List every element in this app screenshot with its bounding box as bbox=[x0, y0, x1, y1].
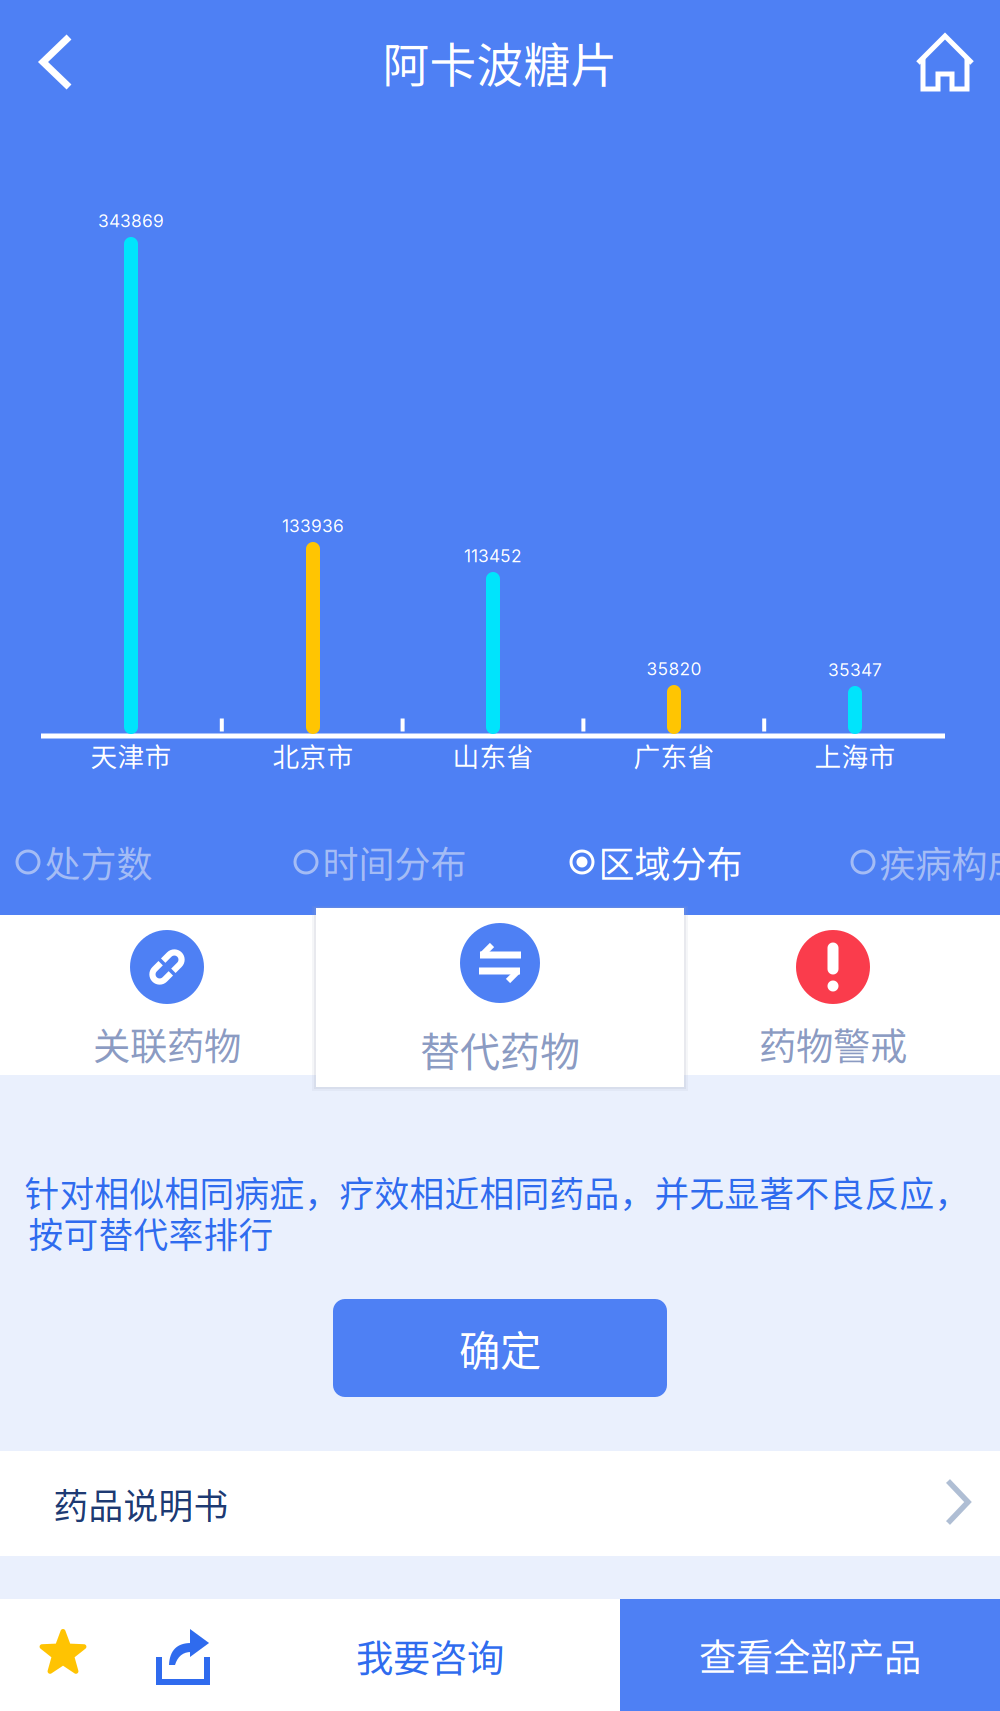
staticText: 北京市 bbox=[272, 736, 353, 774]
staticText: 区域分布 bbox=[598, 836, 742, 888]
staticText: 上海市 bbox=[814, 736, 895, 774]
button[interactable]: Back bbox=[1, 0, 111, 124]
button[interactable]: 时间分布 bbox=[293, 833, 466, 891]
button[interactable]: Favourite bbox=[7, 1597, 119, 1709]
button[interactable]: 处方数 bbox=[15, 833, 152, 891]
staticText: 查看全部产品 bbox=[699, 1628, 921, 1682]
button[interactable]: Share bbox=[127, 1600, 239, 1711]
staticText: 确定 bbox=[459, 1318, 541, 1378]
staticText: 按可替代率排行 bbox=[28, 1208, 273, 1258]
staticText: 时间分布 bbox=[322, 836, 466, 888]
staticText: 阿卡波糖片 bbox=[382, 28, 617, 96]
button[interactable]: 区域分布 bbox=[569, 833, 742, 891]
staticText: 343869 bbox=[98, 210, 164, 231]
staticText: 山东省 bbox=[452, 736, 533, 774]
button[interactable]: 替代药物 bbox=[316, 908, 684, 1087]
staticText: 35820 bbox=[646, 658, 701, 679]
button[interactable]: Home bbox=[890, 0, 1000, 124]
staticText: 药品说明书 bbox=[53, 1479, 228, 1529]
staticText: 针对相似相同病症，疗效相近相同药品，并无显著不良反应， bbox=[24, 1167, 969, 1217]
staticText: 我要咨询 bbox=[356, 1629, 504, 1683]
staticText: 替代药物 bbox=[420, 1020, 580, 1078]
staticText: 35347 bbox=[828, 659, 882, 680]
button[interactable]: 关联药物 bbox=[9, 915, 325, 1075]
staticText: 药物警戒 bbox=[759, 1017, 907, 1071]
button[interactable]: 药物警戒 bbox=[675, 915, 991, 1075]
staticText: 113452 bbox=[464, 545, 522, 566]
staticText: 天津市 bbox=[90, 736, 171, 774]
staticText: 疾病构成 bbox=[879, 836, 1000, 888]
staticText: 处方数 bbox=[44, 836, 152, 888]
button[interactable]: 查看全部产品 bbox=[620, 1599, 1000, 1711]
staticText: 关联药物 bbox=[93, 1017, 241, 1071]
button[interactable]: 我要咨询 bbox=[310, 1600, 550, 1711]
staticText: 广东省 bbox=[633, 736, 714, 774]
staticText: 133936 bbox=[282, 515, 344, 536]
button[interactable]: 药品说明书 bbox=[0, 1451, 1000, 1556]
button[interactable]: 疾病构成 bbox=[850, 833, 1000, 891]
button[interactable]: 确定 bbox=[333, 1299, 667, 1397]
